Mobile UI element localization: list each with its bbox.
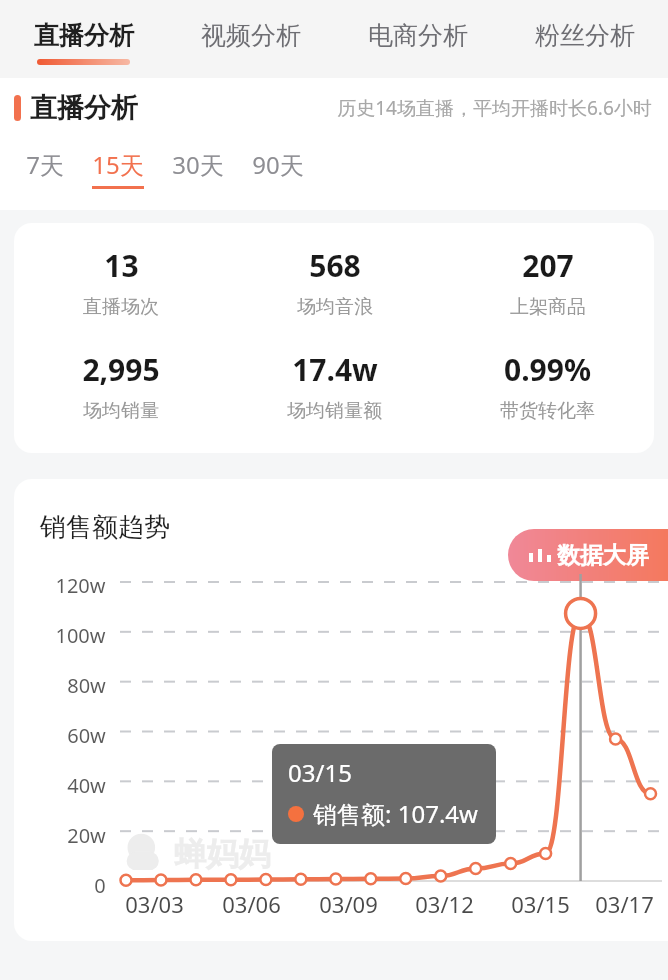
button[interactable]: 568: [228, 245, 441, 319]
button[interactable]: 数据大屏: [508, 529, 668, 581]
staticText: 03/09: [319, 889, 378, 919]
staticText: 数据大屏: [557, 541, 649, 570]
staticText: 03/15: [288, 756, 352, 789]
button[interactable]: 30天: [168, 144, 228, 193]
staticText: 03/15: [511, 889, 570, 919]
staticText: 视频分析: [201, 20, 301, 51]
staticText: 蝉妈妈: [174, 834, 270, 874]
staticText: 场均音浪: [297, 295, 373, 319]
staticText: 销售额: 107.4w: [313, 797, 478, 830]
staticText: 0: [94, 872, 106, 899]
staticText: 17.4w: [292, 349, 378, 390]
button[interactable]: 13: [14, 245, 228, 319]
staticText: 03/12: [415, 889, 474, 919]
staticText: 销售额趋势: [40, 511, 170, 544]
staticText: 568: [309, 245, 361, 286]
staticText: 历史14场直播，平均开播时长6.6小时: [337, 95, 652, 121]
staticText: 场均销量额: [287, 399, 382, 423]
staticText: 13: [104, 245, 139, 286]
button[interactable]: 207: [441, 245, 654, 319]
button[interactable]: 7天: [22, 144, 68, 193]
staticText: 场均销量: [83, 399, 159, 423]
button[interactable]: 15天: [88, 144, 148, 193]
button[interactable]: 0.99%: [441, 349, 654, 423]
button[interactable]: 粉丝分析: [501, 0, 668, 78]
staticText: 电商分析: [368, 20, 468, 51]
staticText: 03/17: [595, 889, 654, 919]
staticText: 2,995: [82, 349, 160, 390]
button[interactable]: 视频分析: [167, 0, 334, 78]
staticText: 120w: [55, 572, 106, 599]
staticText: 粉丝分析: [535, 20, 635, 51]
staticText: 带货转化率: [500, 399, 595, 423]
staticText: 80w: [67, 672, 106, 699]
button[interactable]: 2,995: [14, 349, 228, 423]
staticText: 直播分析: [34, 20, 134, 51]
staticText: 20w: [67, 822, 106, 849]
staticText: 上架商品: [510, 295, 586, 319]
button[interactable]: 直播分析: [0, 0, 167, 78]
staticText: 40w: [67, 772, 106, 799]
staticText: 0.99%: [504, 349, 591, 390]
button[interactable]: 电商分析: [334, 0, 501, 78]
button[interactable]: 17.4w: [228, 349, 441, 423]
staticText: 直播场次: [83, 295, 159, 319]
staticText: 15天: [92, 148, 144, 181]
staticText: 03/03: [125, 889, 184, 919]
button[interactable]: 90天: [248, 144, 308, 193]
staticText: 207: [522, 245, 574, 286]
staticText: 7天: [26, 148, 64, 181]
staticText: 60w: [67, 722, 106, 749]
staticText: 100w: [55, 622, 106, 649]
staticText: 03/06: [222, 889, 281, 919]
staticText: 90天: [252, 148, 304, 181]
staticText: 直播分析: [30, 91, 138, 125]
staticText: 30天: [172, 148, 224, 181]
